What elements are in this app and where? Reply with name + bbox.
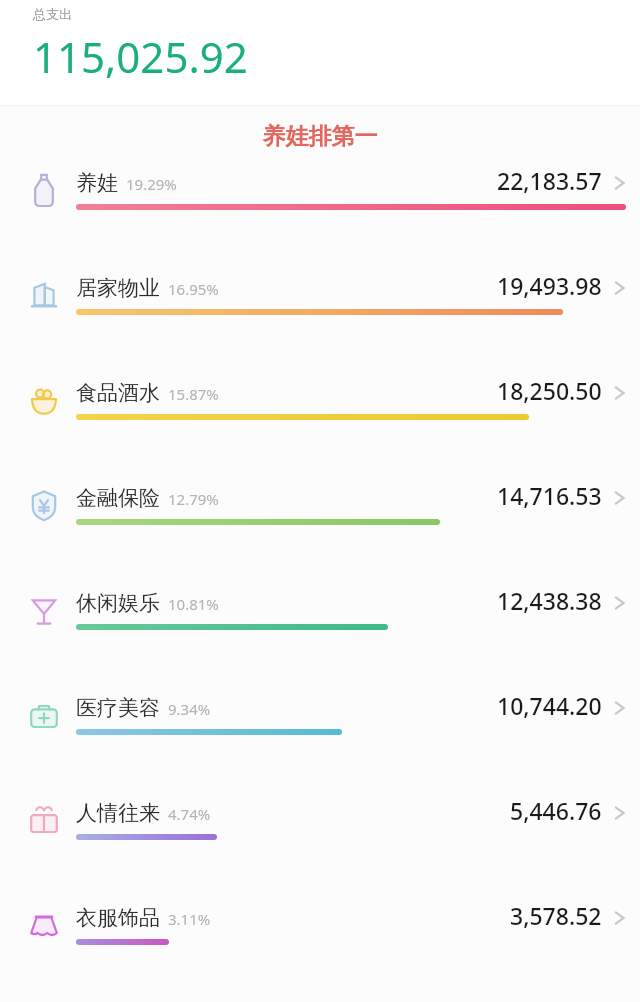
staticText: 5,446.76	[510, 795, 602, 826]
other: 查看人情往来详情	[614, 803, 626, 823]
staticText: 22,183.57	[497, 165, 602, 196]
staticText: 3,578.52	[510, 900, 602, 931]
button[interactable]: 居家物业	[0, 270, 640, 375]
staticText: 10.81%	[168, 594, 219, 614]
other: 查看居家物业详情	[614, 278, 626, 298]
staticText: 12.79%	[168, 489, 219, 509]
staticText: 人情往来	[76, 800, 160, 826]
staticText: 食品酒水	[76, 380, 160, 406]
other: 查看养娃详情	[614, 173, 626, 193]
staticText: 总支出	[33, 6, 72, 22]
button[interactable]: 衣服饰品	[0, 900, 640, 1002]
other: 查看衣服饰品详情	[614, 908, 626, 928]
button[interactable]: 医疗美容	[0, 690, 640, 795]
staticText: 12,438.38	[497, 585, 602, 616]
staticText: 16.95%	[168, 279, 219, 299]
staticText: 19.29%	[126, 174, 177, 194]
staticText: 4.74%	[168, 804, 211, 824]
button[interactable]: 养娃	[0, 165, 640, 270]
staticText: 养娃排第一	[0, 122, 640, 151]
staticText: 居家物业	[76, 275, 160, 301]
staticText: 养娃	[76, 170, 118, 196]
staticText: 10,744.20	[497, 690, 602, 721]
other: 查看休闲娱乐详情	[614, 593, 626, 613]
staticText: 衣服饰品	[76, 905, 160, 931]
staticText: 9.34%	[168, 699, 211, 719]
staticText: 休闲娱乐	[76, 590, 160, 616]
other: 查看金融保险详情	[614, 488, 626, 508]
staticText: 金融保险	[76, 485, 160, 511]
staticText: 3.11%	[168, 909, 211, 929]
staticText: 18,250.50	[497, 375, 602, 406]
button[interactable]: 金融保险	[0, 480, 640, 585]
staticText: 14,716.53	[497, 480, 602, 511]
staticText: 19,493.98	[497, 270, 602, 301]
other: 查看医疗美容详情	[614, 698, 626, 718]
staticText: 115,025.92	[33, 28, 248, 85]
staticText: 医疗美容	[76, 695, 160, 721]
button[interactable]: 休闲娱乐	[0, 585, 640, 690]
other: 查看食品酒水详情	[614, 383, 626, 403]
staticText: 15.87%	[168, 384, 219, 404]
button[interactable]: 人情往来	[0, 795, 640, 900]
button[interactable]: 食品酒水	[0, 375, 640, 480]
